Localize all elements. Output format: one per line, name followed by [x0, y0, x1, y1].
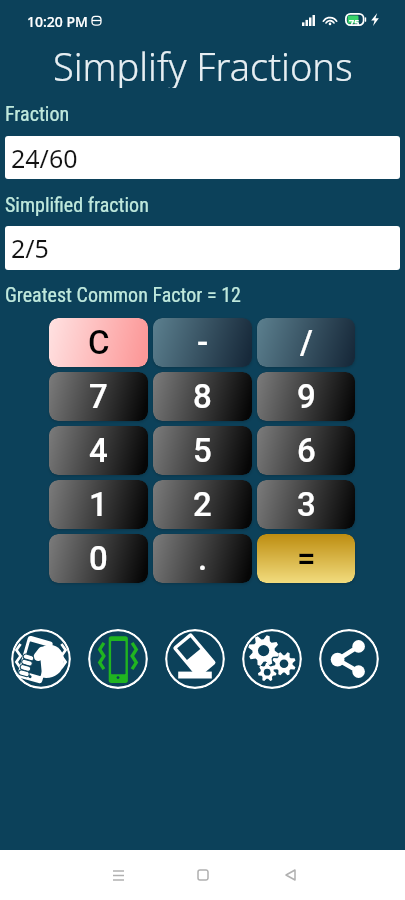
- staticText: 10:20 PM: [27, 12, 88, 31]
- staticText: 3: [297, 485, 316, 524]
- staticText: 9: [297, 377, 316, 416]
- staticText: Simplified fraction: [5, 193, 149, 216]
- staticText: -: [197, 323, 209, 362]
- staticText: Simplify Fractions: [53, 40, 353, 88]
- button[interactable]: 8: [153, 372, 252, 421]
- staticText: 1: [89, 485, 108, 524]
- button[interactable]: Back: [265, 850, 315, 900]
- button[interactable]: 5: [153, 426, 252, 475]
- button[interactable]: 7: [49, 372, 148, 421]
- button[interactable]: Recents: [93, 850, 143, 900]
- button[interactable]: -: [153, 318, 252, 367]
- button[interactable]: 9: [257, 372, 355, 421]
- button[interactable]: /: [257, 318, 355, 367]
- staticText: /: [300, 323, 313, 362]
- staticText: .: [198, 539, 208, 578]
- button[interactable]: 24/60: [5, 136, 400, 179]
- button[interactable]: Settings: [242, 629, 302, 689]
- button[interactable]: 6: [257, 426, 355, 475]
- staticText: 4: [89, 431, 108, 470]
- staticText: 8: [193, 377, 212, 416]
- staticText: Fraction: [5, 102, 70, 125]
- staticText: 2/5: [11, 231, 49, 265]
- staticText: 75: [349, 16, 360, 28]
- button[interactable]: 3: [257, 480, 355, 529]
- button[interactable]: 1: [49, 480, 148, 529]
- button[interactable]: C: [49, 318, 148, 367]
- button[interactable]: 2/5: [5, 226, 400, 270]
- button[interactable]: .: [153, 534, 252, 583]
- button[interactable]: 2: [153, 480, 252, 529]
- button[interactable]: Erase: [165, 629, 225, 689]
- button[interactable]: Shake to simplify: [11, 629, 71, 689]
- staticText: 2: [193, 485, 212, 524]
- button[interactable]: =: [257, 534, 355, 583]
- staticText: =: [297, 539, 316, 578]
- button[interactable]: Vibration: [88, 629, 148, 689]
- staticText: 24/60: [11, 141, 78, 175]
- staticText: 7: [89, 377, 108, 416]
- button[interactable]: Home: [178, 850, 228, 900]
- staticText: 5: [193, 431, 212, 470]
- staticText: Greatest Common Factor = 12: [5, 283, 241, 306]
- staticText: 0: [89, 539, 108, 578]
- staticText: C: [88, 323, 110, 362]
- staticText: 6: [297, 431, 316, 470]
- button[interactable]: 4: [49, 426, 148, 475]
- button[interactable]: 0: [49, 534, 148, 583]
- button[interactable]: Share: [319, 629, 379, 689]
